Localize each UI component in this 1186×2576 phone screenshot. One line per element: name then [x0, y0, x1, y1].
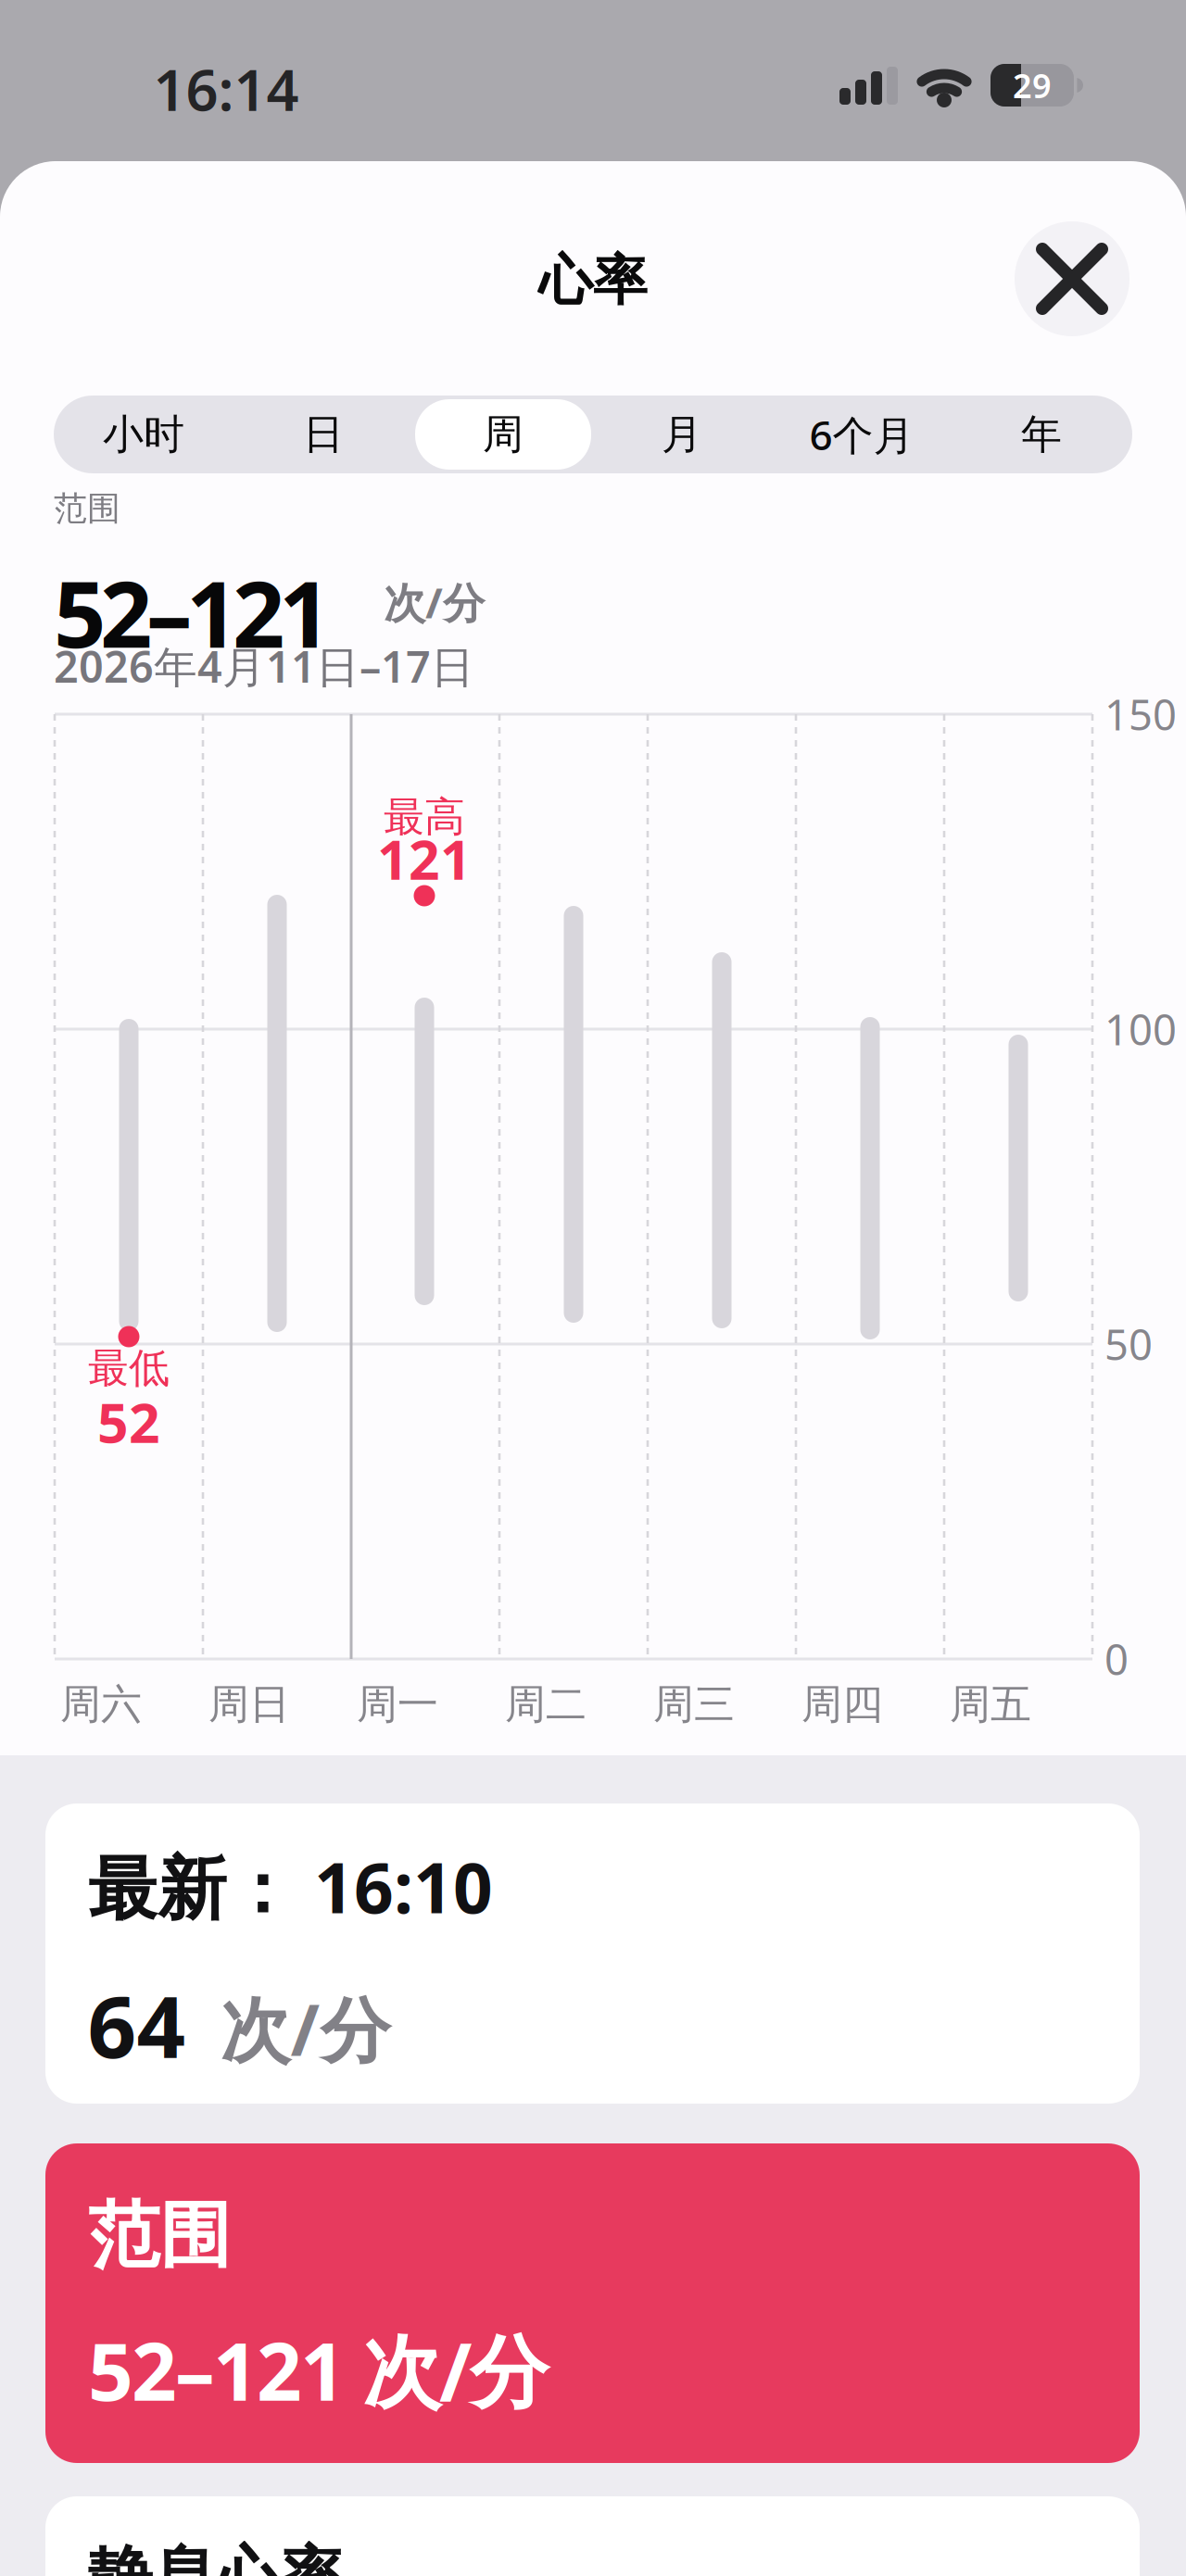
staticText: 小时: [103, 409, 184, 459]
staticText: 6个月: [809, 407, 914, 461]
staticText: 16:14: [153, 51, 299, 127]
staticText: 静息心率: [88, 2537, 344, 2576]
staticText: 最新： 16:10: [88, 1841, 493, 1932]
staticText: 周一: [357, 1679, 438, 1729]
button[interactable]: 关闭: [1015, 221, 1129, 336]
button[interactable]: 静息心率: [45, 2496, 1140, 2576]
staticText: 100: [1104, 1001, 1177, 1057]
staticText: 0: [1104, 1631, 1129, 1687]
staticText: 周五: [950, 1679, 1031, 1729]
button[interactable]: 6个月: [774, 397, 950, 471]
staticText: 月: [662, 409, 702, 459]
staticText: 2026年4月11日–17日: [54, 637, 474, 695]
staticText: 52: [97, 1386, 160, 1458]
button[interactable]: 范围: [45, 2143, 1140, 2463]
staticText: 次/分: [384, 574, 485, 630]
staticText: 周二: [505, 1679, 587, 1729]
button[interactable]: 日: [235, 397, 411, 471]
button[interactable]: 小时: [56, 397, 232, 471]
staticText: 52–121 次/分: [88, 2318, 549, 2423]
staticText: 最低: [88, 1343, 170, 1393]
staticText: 64: [88, 1968, 186, 2081]
staticText: 周六: [60, 1679, 142, 1729]
staticText: 周三: [653, 1679, 735, 1729]
button[interactable]: 最新： 16:10: [45, 1803, 1140, 2104]
staticText: 日: [303, 409, 344, 459]
staticText: 年: [1021, 409, 1062, 459]
button[interactable]: 周: [415, 397, 591, 471]
staticText: 121: [377, 823, 472, 895]
button[interactable]: 月: [594, 397, 770, 471]
staticText: 范围: [88, 2192, 231, 2280]
staticText: 范围: [54, 488, 120, 529]
staticText: 周日: [208, 1679, 290, 1729]
button[interactable]: 年: [953, 397, 1129, 471]
staticText: 150: [1104, 686, 1177, 742]
staticText: 心率: [538, 247, 648, 314]
staticText: 次/分: [220, 1982, 391, 2075]
staticText: 周四: [801, 1679, 883, 1729]
staticText: 最高: [384, 792, 465, 842]
staticText: 周: [483, 409, 524, 459]
staticText: 29: [1013, 63, 1052, 107]
staticText: 52–121: [54, 552, 331, 673]
staticText: 50: [1104, 1316, 1153, 1372]
